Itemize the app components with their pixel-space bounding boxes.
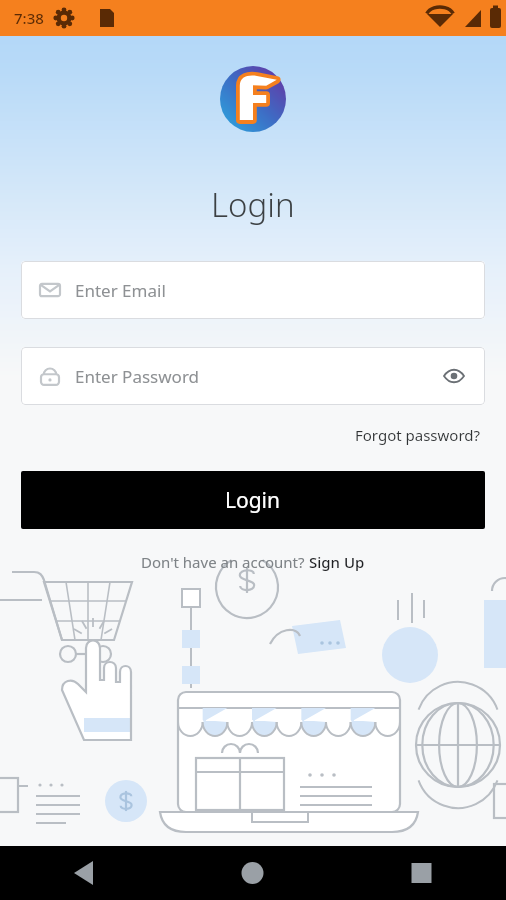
button[interactable]: Enter Password xyxy=(21,347,485,405)
staticText: Enter Email xyxy=(75,279,166,302)
staticText: Login xyxy=(211,182,295,227)
button[interactable]: Forgot password? xyxy=(351,421,485,449)
button[interactable]: Sign Up xyxy=(309,552,365,572)
staticText: Enter Password xyxy=(75,365,200,388)
other: App logo xyxy=(220,66,286,132)
button[interactable]: Back xyxy=(0,846,168,900)
button[interactable]: Enter Email xyxy=(21,261,485,319)
staticText: 7:38 xyxy=(14,8,44,28)
staticText: Don't have an account? xyxy=(141,552,309,572)
button[interactable]: Login xyxy=(21,471,485,529)
button[interactable]: Recents xyxy=(337,846,506,900)
staticText: Login xyxy=(225,486,281,515)
button[interactable]: Home xyxy=(168,846,337,900)
button[interactable]: Show password xyxy=(441,363,467,389)
